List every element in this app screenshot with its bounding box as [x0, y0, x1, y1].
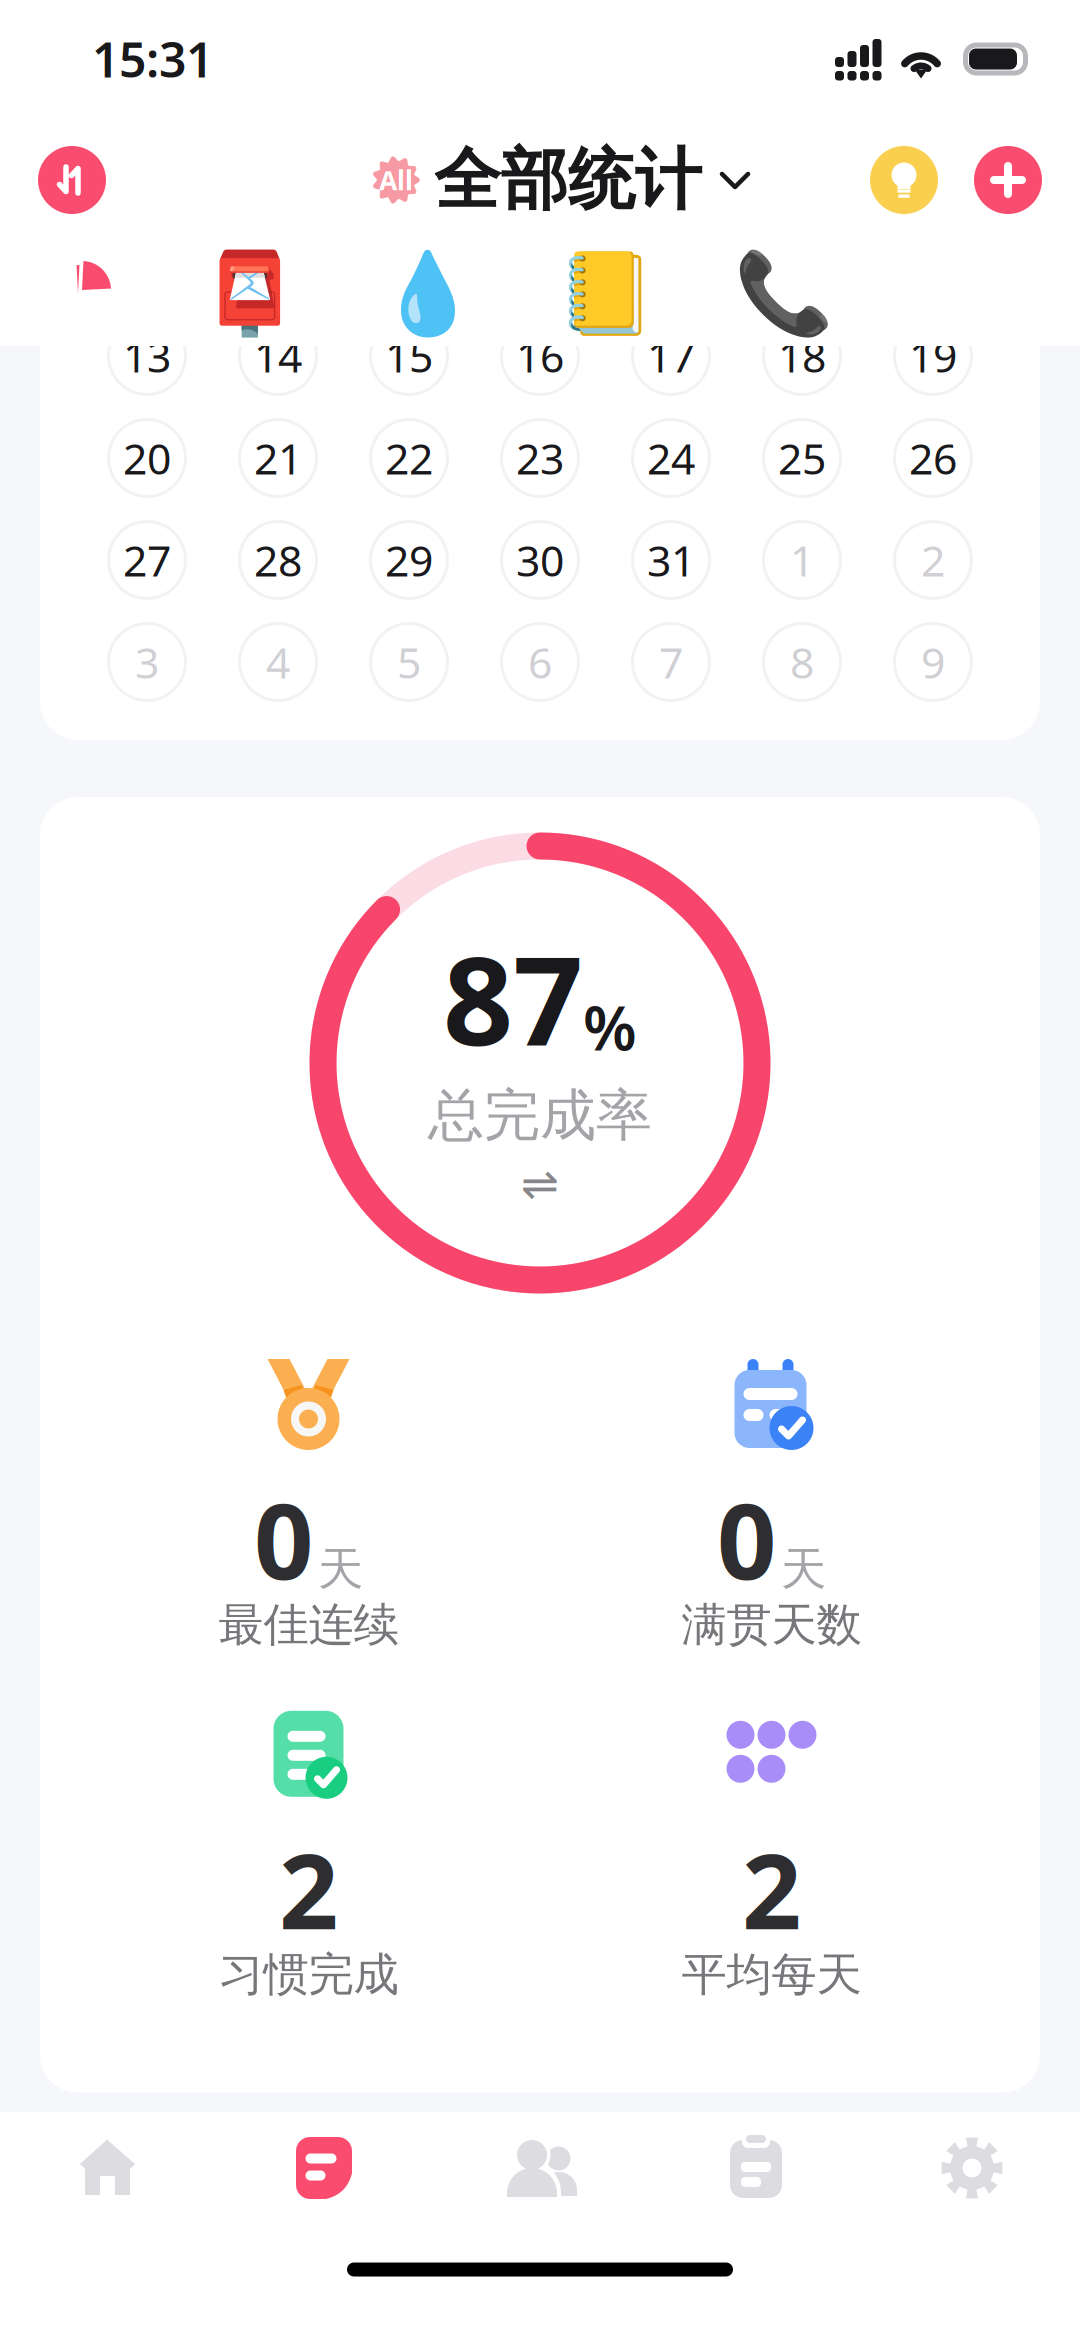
staticText: 2	[921, 532, 945, 588]
button[interactable]: 💧	[339, 242, 517, 346]
staticText: 5	[397, 634, 421, 690]
staticText: 0	[254, 1470, 313, 1608]
button[interactable]: Home	[0, 2112, 216, 2224]
staticText: 22	[385, 430, 433, 486]
staticText: 8	[790, 634, 814, 690]
button[interactable]: Notes	[648, 2112, 864, 2224]
staticText: 6	[528, 634, 552, 690]
staticText: 23	[516, 430, 564, 486]
staticText: 25	[778, 430, 826, 486]
staticText: 💧	[378, 248, 478, 340]
staticText: 3	[135, 634, 159, 690]
staticText: 31	[647, 532, 695, 588]
staticText: 平均每天	[681, 1947, 861, 2003]
staticText: 2	[279, 1820, 338, 1958]
staticText: 24	[647, 430, 695, 486]
staticText: 27	[123, 532, 171, 588]
button[interactable]: 📒	[517, 242, 695, 346]
staticText: 📒	[556, 248, 656, 340]
staticText: 15	[385, 328, 433, 384]
staticText: ⇌	[521, 1158, 559, 1210]
staticText: 20	[123, 430, 171, 486]
staticText: 总完成率	[428, 1081, 652, 1150]
staticText: All	[379, 162, 413, 198]
staticText: 2	[742, 1820, 801, 1958]
staticText: 0	[717, 1470, 776, 1608]
staticText: 全部统计	[434, 139, 702, 221]
staticText: 9	[921, 634, 945, 690]
staticText: 30	[516, 532, 564, 588]
staticText: 13	[123, 328, 171, 384]
staticText: 26	[909, 430, 957, 486]
button[interactable]: All	[372, 139, 752, 221]
staticText: 15:31	[92, 27, 213, 91]
button[interactable]: Add habit	[970, 142, 1046, 218]
staticText: 16	[516, 328, 564, 384]
button[interactable]: 📞	[695, 242, 873, 346]
staticText: 28	[254, 532, 302, 588]
button[interactable]: 📮	[161, 242, 339, 346]
staticText: 1	[790, 532, 814, 588]
staticText: 天	[781, 1541, 826, 1597]
staticText: 满贯天数	[681, 1597, 861, 1653]
button[interactable]: Statistics	[216, 2112, 432, 2224]
staticText: 18	[778, 328, 826, 384]
button[interactable]: Friends	[432, 2112, 648, 2224]
staticText: 4	[266, 634, 290, 690]
staticText: 17	[647, 328, 695, 384]
staticText: 87	[443, 916, 583, 1079]
staticText: 29	[385, 532, 433, 588]
staticText: 📞	[734, 248, 834, 340]
staticText: 📮	[200, 248, 300, 340]
staticText: 最佳连续	[218, 1597, 398, 1653]
button[interactable]: Tips	[866, 142, 942, 218]
staticText: 14	[254, 328, 302, 384]
staticText: 天	[318, 1541, 363, 1597]
button[interactable]: Sort	[30, 138, 114, 222]
staticText: 习惯完成	[218, 1947, 398, 2003]
button[interactable]: All habits	[17, 242, 161, 346]
staticText: 7	[659, 634, 683, 690]
staticText: 19	[909, 328, 957, 384]
button[interactable]: Settings	[864, 2112, 1080, 2224]
staticText: %	[583, 986, 637, 1067]
staticText: 21	[254, 430, 302, 486]
